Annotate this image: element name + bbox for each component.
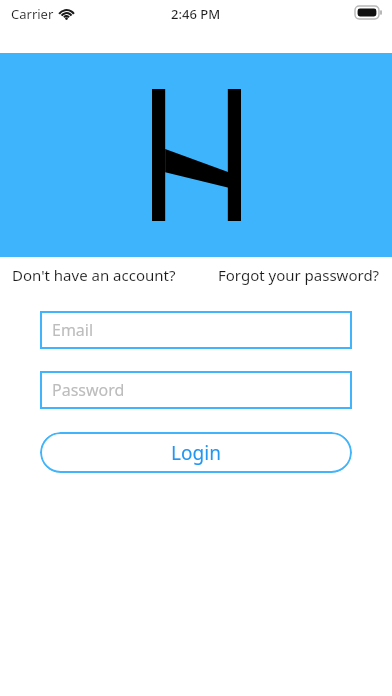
button[interactable]: Login — [40, 432, 352, 473]
button[interactable]: Email — [40, 311, 352, 349]
button[interactable]: Forgot your password? — [218, 265, 380, 285]
staticText: Forgot your password? — [218, 265, 380, 285]
button[interactable]: Password — [40, 371, 352, 409]
staticText: Don't have an account? — [12, 265, 176, 285]
staticText: Password — [52, 379, 125, 401]
staticText: Email — [52, 319, 94, 341]
button[interactable]: Don't have an account? — [12, 265, 176, 285]
staticText: Carrier — [11, 5, 54, 23]
staticText: Login — [171, 440, 221, 466]
staticText: 2:46 PM — [171, 5, 221, 23]
